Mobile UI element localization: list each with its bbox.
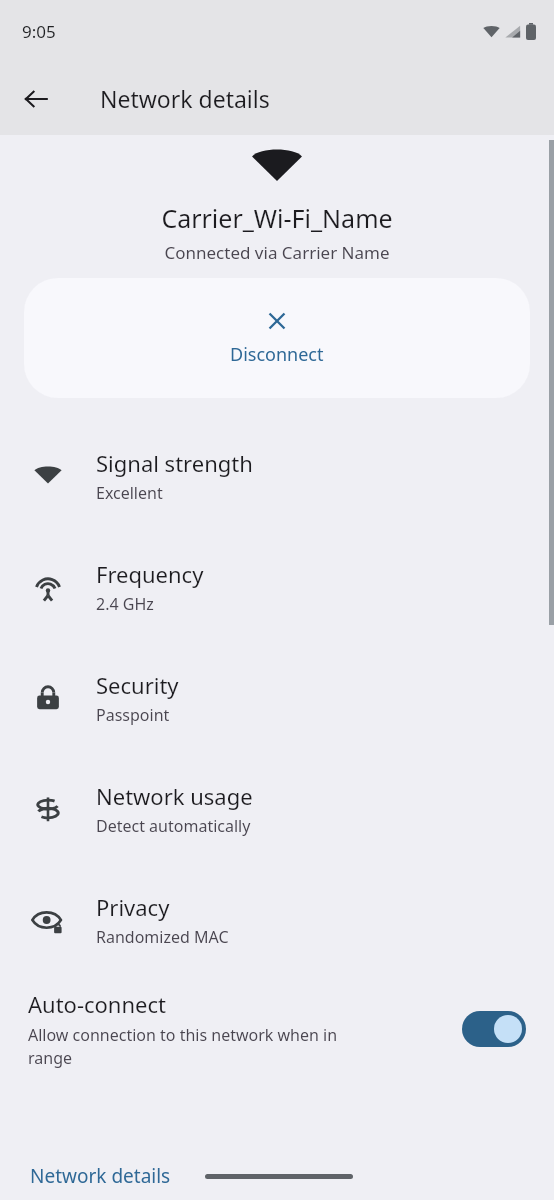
staticText: Connected via Carrier Name bbox=[164, 241, 390, 264]
button[interactable]: Frequency bbox=[0, 531, 554, 642]
staticText: Auto-connect bbox=[28, 989, 166, 1019]
button[interactable]: Privacy bbox=[0, 864, 554, 975]
staticText: Network details bbox=[100, 83, 270, 114]
button[interactable]: Auto-connect toggle bbox=[462, 1011, 526, 1047]
button[interactable]: Back bbox=[12, 75, 60, 123]
staticText: Randomized MAC bbox=[96, 926, 229, 948]
button[interactable]: Auto-connect bbox=[28, 989, 526, 1069]
staticText: Detect automatically bbox=[96, 815, 251, 837]
staticText: 2.4 GHz bbox=[96, 593, 154, 615]
staticText: 9:05 bbox=[22, 20, 56, 43]
staticText: Network usage bbox=[96, 781, 253, 811]
button[interactable]: Signal strength bbox=[0, 420, 554, 531]
button[interactable]: Network usage bbox=[0, 753, 554, 864]
staticText: Excellent bbox=[96, 482, 163, 504]
button[interactable]: Security bbox=[0, 642, 554, 753]
button[interactable]: Network details bbox=[30, 1163, 171, 1189]
button[interactable]: Disconnect bbox=[24, 278, 530, 398]
staticText: Frequency bbox=[96, 559, 204, 589]
staticText: Privacy bbox=[96, 892, 170, 922]
staticText: Carrier_Wi-Fi_Name bbox=[161, 201, 393, 235]
staticText: Passpoint bbox=[96, 704, 170, 726]
staticText: Disconnect bbox=[230, 342, 324, 367]
staticText: Allow connection to this network when in… bbox=[28, 1024, 338, 1069]
staticText: Signal strength bbox=[96, 448, 253, 478]
staticText: Security bbox=[96, 670, 179, 700]
